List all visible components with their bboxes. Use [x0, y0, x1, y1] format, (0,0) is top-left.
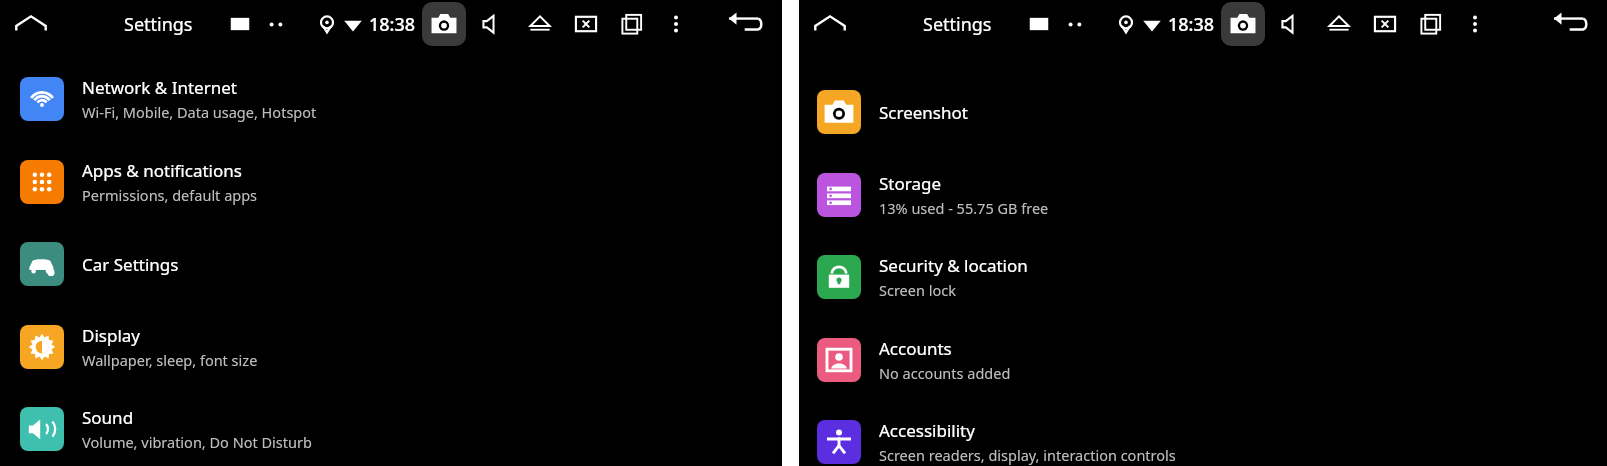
staticText: Security & location [879, 254, 1028, 277]
button[interactable]: More options [658, 6, 694, 42]
button[interactable]: Display [0, 314, 782, 380]
button[interactable]: Storage [799, 162, 1607, 228]
button[interactable]: Close display [1365, 4, 1405, 44]
button[interactable]: Accessibility [799, 409, 1607, 466]
staticText: Wi-Fi, Mobile, Data usage, Hotspot [82, 102, 317, 122]
staticText: Wallpaper, sleep, font size [82, 350, 258, 370]
staticText: Display [82, 324, 140, 347]
button[interactable]: Volume [474, 4, 514, 44]
button[interactable]: Apps & notifications [0, 149, 782, 215]
button[interactable]: Home [807, 1, 853, 47]
staticText: No accounts added [879, 363, 1011, 383]
button[interactable]: Back [718, 0, 770, 48]
staticText: Screen readers, display, interaction con… [879, 445, 1176, 465]
button[interactable]: Screenshot [1221, 2, 1265, 46]
staticText: Accessibility [879, 419, 975, 442]
staticText: Volume, vibration, Do Not Disturb [82, 432, 312, 452]
button[interactable]: Back [1543, 0, 1595, 48]
staticText: Settings [124, 12, 193, 37]
button[interactable]: More options [1457, 6, 1493, 42]
staticText: Network & Internet [82, 76, 237, 99]
staticText: Screenshot [879, 101, 968, 124]
button[interactable]: Car Settings [0, 231, 782, 297]
staticText: 18:38 [369, 12, 416, 37]
staticText: Settings [923, 12, 992, 37]
button[interactable]: Screenshot [799, 79, 1607, 145]
staticText: Car Settings [82, 253, 179, 276]
button[interactable]: Eject [520, 4, 560, 44]
button[interactable]: Security & location [799, 244, 1607, 310]
button[interactable]: Volume [1273, 4, 1313, 44]
button[interactable]: Network & Internet [0, 66, 782, 132]
button[interactable]: Close display [566, 4, 606, 44]
button[interactable]: Recent apps [612, 4, 652, 44]
staticText: 13% used - 55.75 GB free [879, 198, 1049, 218]
staticText: Accounts [879, 337, 952, 360]
staticText: 18:38 [1168, 12, 1215, 37]
staticText: Permissions, default apps [82, 185, 258, 205]
button[interactable]: Recent apps [1411, 4, 1451, 44]
staticText: Sound [82, 406, 134, 429]
staticText: Apps & notifications [82, 159, 242, 182]
button[interactable]: Screenshot [422, 2, 466, 46]
button[interactable]: Accounts [799, 327, 1607, 393]
button[interactable]: Home [8, 1, 54, 47]
button[interactable]: Eject [1319, 4, 1359, 44]
button[interactable]: Sound [0, 396, 782, 462]
staticText: Storage [879, 172, 942, 195]
staticText: Screen lock [879, 280, 956, 300]
